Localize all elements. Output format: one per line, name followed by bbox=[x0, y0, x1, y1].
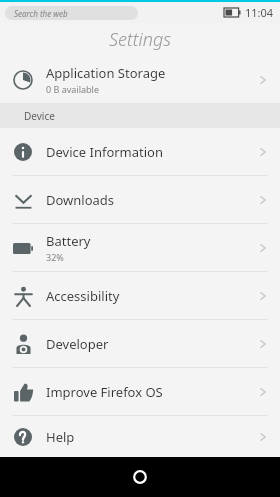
button[interactable]: Improve Firefox OS bbox=[0, 368, 280, 415]
button[interactable]: Downloads bbox=[0, 176, 280, 223]
staticText: Battery bbox=[46, 232, 91, 250]
button[interactable]: Accessibility bbox=[0, 272, 280, 319]
staticText: Settings bbox=[109, 27, 171, 52]
staticText: Developer bbox=[46, 335, 109, 353]
staticText: 32% bbox=[46, 251, 64, 263]
staticText: Improve Firefox OS bbox=[46, 383, 163, 401]
staticText: 0 B available bbox=[46, 83, 99, 95]
button[interactable]: Battery bbox=[0, 224, 280, 271]
button[interactable]: Search the web bbox=[5, 6, 138, 20]
staticText: Help bbox=[46, 428, 75, 446]
button[interactable]: Device Information bbox=[0, 128, 280, 175]
button[interactable]: Help bbox=[0, 416, 280, 457]
staticText: Accessibility bbox=[46, 287, 120, 305]
staticText: Downloads bbox=[46, 191, 115, 209]
staticText: Application Storage bbox=[46, 64, 166, 82]
staticText: Device Information bbox=[46, 143, 164, 161]
button[interactable]: Home bbox=[127, 464, 153, 490]
button[interactable]: Application Storage bbox=[0, 56, 280, 103]
staticText: 11:04 bbox=[245, 5, 274, 20]
button[interactable]: Developer bbox=[0, 320, 280, 367]
staticText: Device bbox=[24, 109, 55, 123]
staticText: Search the web bbox=[14, 8, 68, 19]
